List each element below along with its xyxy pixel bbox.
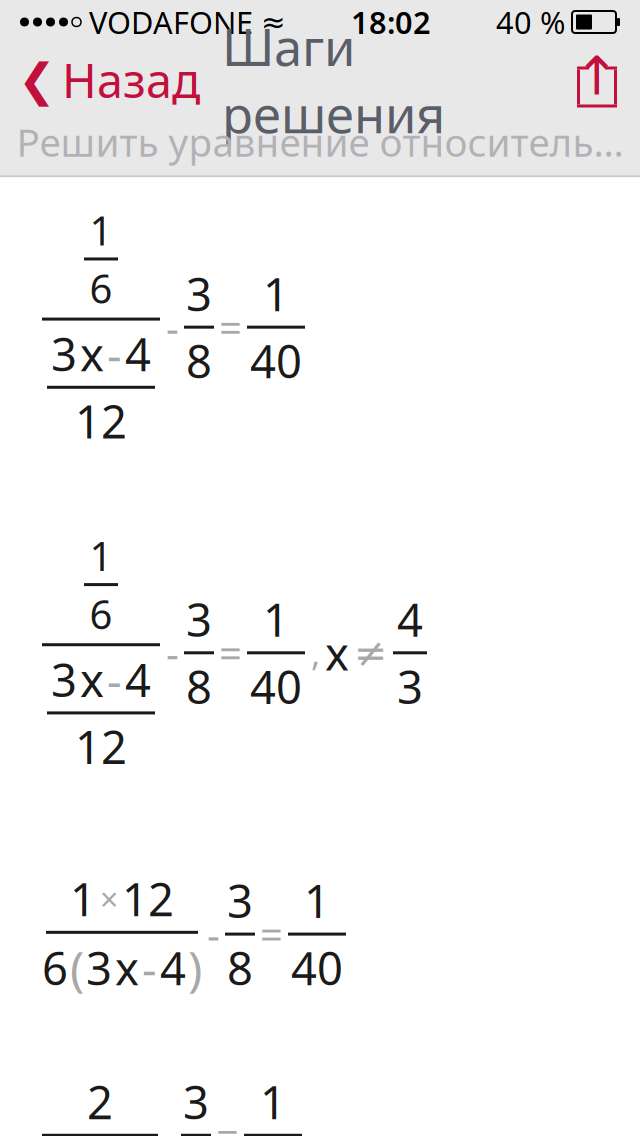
staticText: = — [219, 301, 242, 354]
staticText: ≠ — [354, 630, 388, 675]
staticText: 1 — [89, 203, 112, 256]
staticText: - — [166, 626, 179, 679]
staticText: Шаги решения — [222, 13, 445, 147]
staticText: Решить уравнение относитель... — [16, 116, 623, 167]
staticText: 6 — [89, 587, 112, 640]
staticText: 6 — [89, 261, 112, 315]
staticText: 40 — [250, 331, 302, 391]
staticText: 3 — [186, 263, 212, 324]
staticText: - — [107, 324, 122, 384]
staticText: ↑ — [574, 46, 619, 106]
staticText: x — [115, 938, 139, 998]
staticText: = — [219, 626, 242, 679]
staticText: 4 — [125, 649, 151, 709]
staticText: Назад — [62, 49, 200, 111]
staticText: x — [325, 623, 349, 683]
staticText: - — [142, 938, 157, 998]
staticText: 8 — [186, 331, 212, 391]
staticText: × — [100, 877, 118, 920]
staticText: 18:02 — [351, 2, 431, 42]
staticText: 1 — [304, 870, 330, 931]
staticText: 40 — [291, 938, 343, 998]
staticText: 1 — [260, 1072, 286, 1132]
staticText: , — [311, 630, 320, 676]
button[interactable]: ❮ — [0, 43, 200, 117]
button[interactable]: Share — [572, 51, 640, 109]
staticText: 4 — [160, 938, 186, 998]
staticText: 3 — [227, 870, 253, 931]
staticText: ❮ — [18, 54, 56, 106]
staticText: 6 — [42, 938, 68, 998]
staticText: 1 — [89, 529, 112, 582]
staticText: 3 — [186, 589, 212, 649]
staticText: 40 % — [496, 2, 565, 42]
staticText: 12 — [122, 869, 174, 929]
staticText: 3 — [86, 938, 112, 998]
staticText: 8 — [227, 938, 253, 998]
staticText: 40 — [250, 656, 302, 716]
staticText: = — [260, 907, 283, 961]
staticText: ≈ — [261, 5, 286, 39]
staticText: - — [107, 649, 122, 709]
staticText: 4 — [125, 324, 151, 384]
staticText: 1 — [263, 589, 289, 649]
staticText: 4 — [397, 589, 423, 649]
staticText: 12 — [75, 391, 127, 451]
staticText: ( — [70, 936, 84, 999]
staticText: ) — [188, 936, 202, 999]
staticText: VODAFONE — [89, 2, 253, 42]
staticText: 1 — [70, 869, 96, 929]
staticText: x — [80, 324, 104, 384]
staticText: 3 — [397, 656, 423, 716]
staticText: 2 — [87, 1072, 113, 1132]
staticText: 3 — [51, 649, 77, 709]
staticText: 3 — [183, 1072, 209, 1132]
staticText: 3 — [51, 324, 77, 384]
staticText: x — [80, 649, 104, 709]
staticText: - — [207, 907, 220, 961]
staticText: 1 — [263, 263, 289, 324]
staticText: 8 — [186, 656, 212, 716]
staticText: 12 — [75, 716, 127, 777]
staticText: = — [216, 1109, 239, 1136]
staticText: - — [166, 301, 179, 354]
